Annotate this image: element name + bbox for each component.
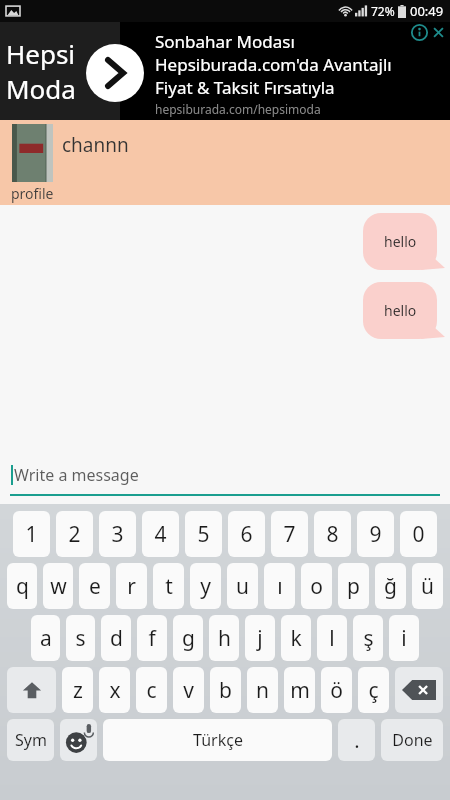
button[interactable]: Shift bbox=[7, 667, 56, 713]
staticText: ş bbox=[363, 624, 374, 653]
button[interactable]: c bbox=[136, 667, 167, 713]
staticText: Done bbox=[392, 729, 433, 751]
button[interactable]: Write a message bbox=[0, 456, 450, 504]
button[interactable]: q bbox=[7, 563, 37, 609]
button[interactable]: g bbox=[173, 615, 203, 661]
button[interactable]: t bbox=[153, 563, 184, 609]
staticText: h bbox=[218, 624, 231, 653]
staticText: m bbox=[290, 676, 310, 705]
button[interactable]: m bbox=[284, 667, 315, 713]
button[interactable]: a bbox=[31, 615, 60, 661]
staticText: Sym bbox=[15, 729, 47, 751]
button[interactable]: r bbox=[116, 563, 147, 609]
staticText: r bbox=[127, 572, 136, 601]
button[interactable]: 5 bbox=[185, 511, 222, 557]
staticText: 8 bbox=[326, 520, 339, 549]
button[interactable]: 4 bbox=[142, 511, 179, 557]
button[interactable]: 2 bbox=[56, 511, 93, 557]
staticText: l bbox=[329, 624, 335, 653]
button[interactable]: Done bbox=[381, 719, 443, 761]
button[interactable]: ğ bbox=[375, 563, 406, 609]
button[interactable]: ü bbox=[412, 563, 443, 609]
staticText: 72% bbox=[371, 3, 395, 19]
button[interactable]: x bbox=[99, 667, 130, 713]
button[interactable]: e bbox=[79, 563, 110, 609]
button[interactable]: 0 bbox=[400, 511, 437, 557]
staticText: hepsiburada.com/hepsimoda bbox=[155, 101, 321, 117]
button[interactable]: b bbox=[210, 667, 241, 713]
staticText: ı bbox=[277, 572, 283, 601]
button[interactable]: Türkçe bbox=[103, 719, 332, 761]
staticText: b bbox=[219, 676, 232, 705]
staticText: 2 bbox=[68, 520, 81, 549]
button[interactable]: y bbox=[190, 563, 221, 609]
staticText: 9 bbox=[369, 520, 382, 549]
button[interactable]: Close ad bbox=[430, 24, 447, 41]
button[interactable]: 9 bbox=[357, 511, 394, 557]
staticText: d bbox=[110, 624, 123, 653]
staticText: Fiyat & Taksit Fırsatıyla bbox=[155, 76, 335, 99]
staticText: 7 bbox=[283, 520, 296, 549]
staticText: j bbox=[257, 624, 263, 653]
staticText: hello bbox=[384, 232, 417, 251]
button[interactable]: channn bbox=[0, 120, 450, 205]
button[interactable]: h bbox=[209, 615, 239, 661]
button[interactable]: hello bbox=[363, 282, 445, 339]
staticText: u bbox=[236, 572, 249, 601]
button[interactable]: hello bbox=[363, 213, 445, 270]
staticText: 6 bbox=[240, 520, 253, 549]
staticText: 0 bbox=[412, 520, 425, 549]
button[interactable]: d bbox=[101, 615, 131, 661]
button[interactable]: Backspace bbox=[395, 667, 443, 713]
staticText: w bbox=[50, 572, 67, 601]
button[interactable]: 7 bbox=[271, 511, 308, 557]
staticText: 00:49 bbox=[410, 2, 444, 20]
button[interactable]: l bbox=[317, 615, 347, 661]
staticText: v bbox=[183, 676, 194, 705]
staticText: f bbox=[148, 624, 156, 653]
button[interactable]: Sym bbox=[7, 719, 54, 761]
button[interactable]: 6 bbox=[228, 511, 265, 557]
button[interactable]: 1 bbox=[13, 511, 50, 557]
button[interactable]: p bbox=[338, 563, 369, 609]
button[interactable]: j bbox=[245, 615, 275, 661]
button[interactable]: s bbox=[66, 615, 95, 661]
staticText: ç bbox=[368, 676, 379, 705]
staticText: Hepsiburada.com'da Avantajlı bbox=[155, 53, 392, 76]
button[interactable]: ç bbox=[358, 667, 389, 713]
staticText: ğ bbox=[384, 572, 397, 601]
staticText: hello bbox=[384, 301, 417, 320]
button[interactable]: i bbox=[389, 615, 419, 661]
button[interactable]: . bbox=[338, 719, 375, 761]
button[interactable]: w bbox=[43, 563, 73, 609]
button[interactable]: n bbox=[247, 667, 278, 713]
button[interactable]: 3 bbox=[99, 511, 136, 557]
button[interactable]: 8 bbox=[314, 511, 351, 557]
staticText: channn bbox=[62, 132, 129, 158]
button[interactable]: k bbox=[281, 615, 311, 661]
staticText: o bbox=[310, 572, 323, 601]
staticText: 3 bbox=[111, 520, 124, 549]
staticText: . bbox=[354, 727, 360, 754]
staticText: y bbox=[200, 572, 211, 601]
button[interactable]: ö bbox=[321, 667, 352, 713]
button[interactable]: f bbox=[137, 615, 167, 661]
staticText: Hepsi bbox=[6, 36, 76, 71]
staticText: k bbox=[290, 624, 302, 653]
staticText: s bbox=[75, 624, 86, 653]
staticText: i bbox=[401, 624, 407, 653]
button[interactable]: ş bbox=[353, 615, 383, 661]
button[interactable]: ı bbox=[264, 563, 295, 609]
button[interactable]: Ad info bbox=[411, 24, 428, 41]
button[interactable]: Hepsi bbox=[0, 22, 450, 120]
button[interactable]: o bbox=[301, 563, 332, 609]
staticText: n bbox=[256, 676, 269, 705]
staticText: c bbox=[146, 676, 157, 705]
button[interactable]: z bbox=[62, 667, 93, 713]
button[interactable]: Emoji bbox=[60, 719, 97, 761]
staticText: profile bbox=[11, 184, 54, 203]
staticText: t bbox=[165, 572, 173, 601]
staticText: 4 bbox=[154, 520, 167, 549]
button[interactable]: v bbox=[173, 667, 204, 713]
button[interactable]: u bbox=[227, 563, 258, 609]
